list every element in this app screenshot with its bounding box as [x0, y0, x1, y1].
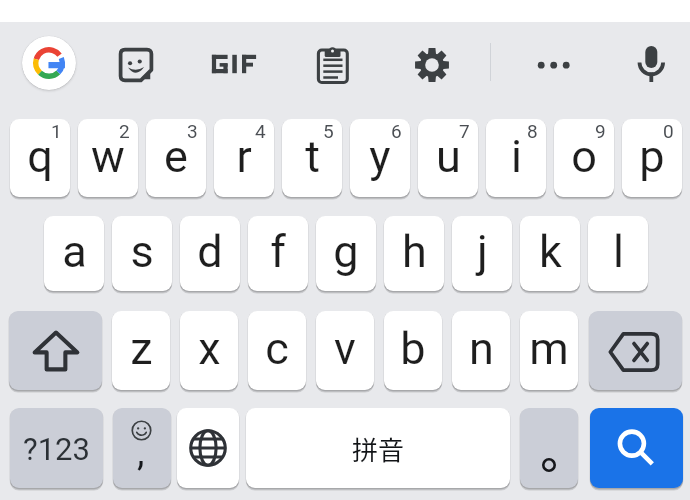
staticText: 7: [459, 120, 470, 142]
button[interactable]: f: [248, 216, 308, 291]
button[interactable]: Google: [22, 36, 76, 90]
staticText: 5: [323, 120, 334, 142]
button[interactable]: Search: [590, 408, 683, 488]
button[interactable]: i: [486, 119, 546, 197]
staticText: s: [130, 225, 154, 278]
button[interactable]: c: [248, 311, 306, 390]
staticText: g: [333, 225, 359, 278]
staticText: u: [436, 130, 461, 183]
staticText: 0: [663, 120, 674, 142]
staticText: 4: [255, 120, 266, 142]
staticText: i: [511, 130, 522, 183]
button[interactable]: d: [180, 216, 240, 291]
staticText: t: [305, 130, 320, 183]
staticText: j: [477, 225, 488, 278]
staticText: e: [164, 130, 188, 183]
staticText: v: [334, 322, 356, 375]
button[interactable]: t: [282, 119, 342, 197]
button[interactable]: b: [384, 311, 442, 390]
button[interactable]: j: [452, 216, 512, 291]
staticText: z: [130, 322, 153, 375]
button[interactable]: p: [622, 119, 682, 197]
staticText: b: [400, 322, 426, 375]
button[interactable]: g: [316, 216, 376, 291]
staticText: d: [197, 225, 223, 278]
button[interactable]: r: [214, 119, 274, 197]
staticText: c: [265, 322, 289, 375]
staticText: p: [639, 130, 665, 183]
button[interactable]: Voice input: [630, 43, 674, 87]
staticText: o: [571, 130, 597, 183]
button[interactable]: o: [554, 119, 614, 197]
button[interactable]: 拼音: [246, 408, 510, 488]
staticText: h: [402, 225, 427, 278]
staticText: a: [62, 225, 87, 278]
button[interactable]: Period: [520, 408, 578, 488]
staticText: ?123: [23, 431, 90, 467]
button[interactable]: Shift: [9, 311, 102, 390]
staticText: 6: [391, 120, 402, 142]
staticText: y: [369, 130, 391, 183]
staticText: k: [539, 225, 562, 278]
staticText: 1: [51, 120, 62, 142]
button[interactable]: Clipboard: [311, 43, 355, 87]
staticText: x: [198, 322, 221, 375]
button[interactable]: l: [588, 216, 648, 291]
staticText: l: [613, 225, 624, 278]
button[interactable]: w: [78, 119, 138, 197]
staticText: ,: [137, 430, 145, 475]
staticText: 2: [119, 120, 130, 142]
button[interactable]: s: [112, 216, 172, 291]
button[interactable]: n: [452, 311, 510, 390]
button[interactable]: GIF: [207, 43, 261, 87]
staticText: m: [529, 322, 569, 375]
staticText: n: [469, 322, 494, 375]
staticText: r: [236, 130, 252, 183]
staticText: 9: [595, 120, 606, 142]
button[interactable]: y: [350, 119, 410, 197]
button[interactable]: m: [520, 311, 578, 390]
button[interactable]: u: [418, 119, 478, 197]
button[interactable]: v: [316, 311, 374, 390]
button[interactable]: a: [44, 216, 104, 291]
staticText: 拼音: [352, 430, 405, 468]
staticText: 8: [527, 120, 538, 142]
staticText: w: [91, 130, 125, 183]
button[interactable]: k: [520, 216, 580, 291]
button[interactable]: Backspace: [589, 311, 682, 390]
button[interactable]: h: [384, 216, 444, 291]
button[interactable]: e: [146, 119, 206, 197]
button[interactable]: q: [10, 119, 70, 197]
button[interactable]: x: [180, 311, 238, 390]
button[interactable]: More options: [532, 43, 576, 87]
staticText: 3: [187, 120, 198, 142]
button[interactable]: Settings: [410, 43, 454, 87]
button[interactable]: ?123: [10, 408, 103, 488]
button[interactable]: Stickers: [114, 43, 158, 87]
button[interactable]: Emoji and comma: [113, 408, 171, 488]
button[interactable]: Switch language: [177, 408, 239, 488]
button[interactable]: z: [112, 311, 170, 390]
staticText: f: [270, 225, 286, 278]
staticText: q: [27, 130, 53, 183]
